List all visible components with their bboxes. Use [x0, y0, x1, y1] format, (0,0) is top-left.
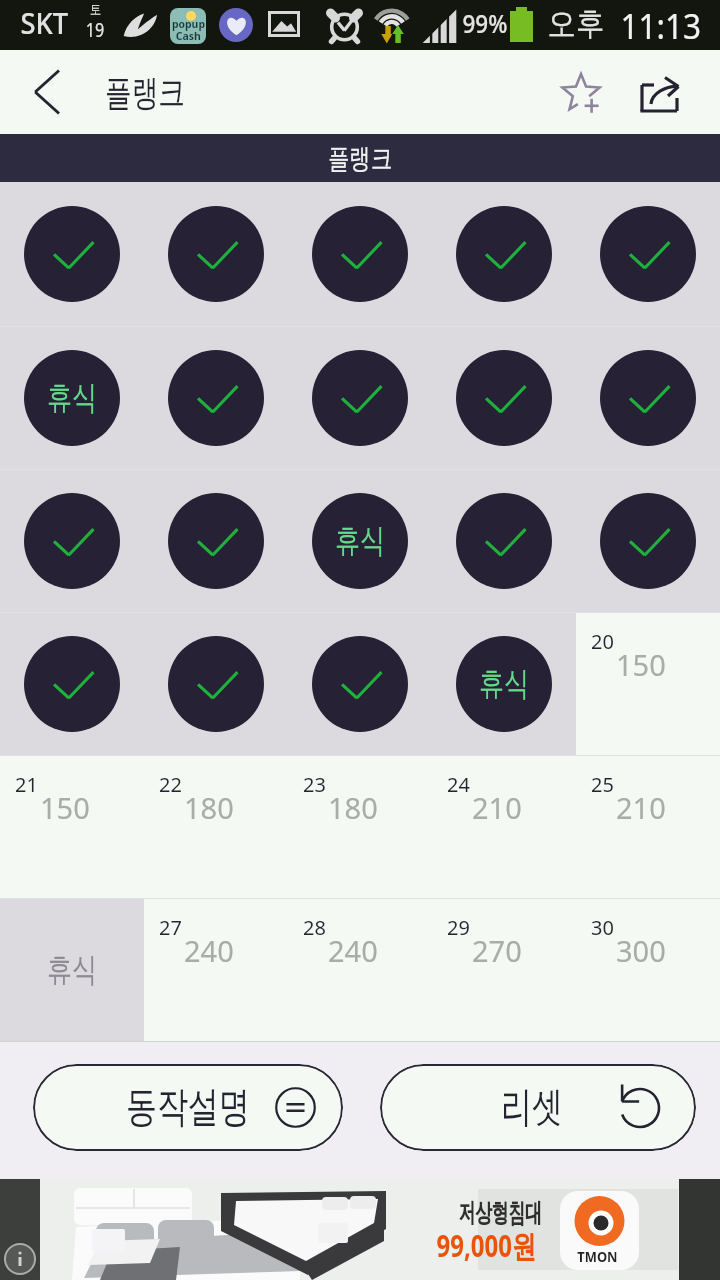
staticText: 29 [447, 914, 470, 941]
button[interactable]: 리셋 [380, 1064, 696, 1151]
staticText: 99,000원 [436, 1225, 536, 1266]
button[interactable] [288, 326, 432, 469]
button[interactable] [432, 326, 576, 469]
staticText: 25 [591, 771, 614, 798]
button[interactable]: 24 [432, 755, 576, 898]
staticText: 210 [616, 788, 666, 827]
button[interactable]: 휴식 [0, 898, 144, 1041]
button[interactable] [144, 612, 288, 755]
staticText: 리셋 [501, 1081, 563, 1134]
button[interactable] [0, 469, 144, 612]
button[interactable]: 휴식 [288, 469, 432, 612]
button[interactable]: Back [0, 50, 94, 134]
staticText: 11:13 [620, 2, 701, 50]
staticText: 210 [472, 788, 522, 827]
staticText: 30 [591, 914, 614, 941]
staticText: 21 [15, 771, 38, 798]
button[interactable]: 30 [576, 898, 720, 1041]
staticText: 플랭크 [105, 70, 185, 115]
button[interactable]: 27 [144, 898, 288, 1041]
button[interactable]: 휴식 [0, 326, 144, 469]
button[interactable]: Add to favourites [538, 50, 624, 134]
staticText: 22 [159, 771, 182, 798]
staticText: 플랭크 [328, 141, 392, 176]
staticText: SKT [20, 3, 68, 42]
button[interactable] [288, 182, 432, 326]
button[interactable]: 23 [288, 755, 432, 898]
button[interactable] [0, 182, 144, 326]
staticText: 240 [184, 931, 234, 970]
staticText: 동작설명 [126, 1081, 250, 1134]
staticText: 휴식 [335, 520, 385, 562]
button[interactable] [0, 612, 144, 755]
staticText: 휴식 [47, 949, 97, 991]
staticText: 토 [90, 1, 101, 17]
button[interactable] [576, 469, 720, 612]
staticText: 20 [591, 628, 614, 655]
button[interactable]: 28 [288, 898, 432, 1041]
staticText: 180 [328, 788, 378, 827]
button[interactable] [288, 612, 432, 755]
button[interactable]: 29 [432, 898, 576, 1041]
button[interactable] [144, 326, 288, 469]
button[interactable] [576, 182, 720, 326]
staticText: 240 [328, 931, 378, 970]
button[interactable]: 휴식 [432, 612, 576, 755]
button[interactable]: 25 [576, 755, 720, 898]
staticText: 저상형침대 [458, 1197, 542, 1230]
button[interactable]: Share [624, 50, 720, 134]
staticText: 28 [303, 914, 326, 941]
button[interactable]: 21 [0, 755, 144, 898]
staticText: 휴식 [479, 663, 529, 705]
staticText: 300 [616, 931, 666, 970]
staticText: 24 [447, 771, 470, 798]
button[interactable]: Advertisement [0, 1179, 720, 1280]
button[interactable] [144, 182, 288, 326]
button[interactable]: 20 [576, 612, 720, 755]
button[interactable] [576, 326, 720, 469]
staticText: 99% [462, 6, 507, 40]
staticText: 270 [472, 931, 522, 970]
button[interactable] [432, 182, 576, 326]
staticText: popup [172, 16, 205, 31]
staticText: 180 [184, 788, 234, 827]
staticText: 27 [159, 914, 182, 941]
button[interactable]: 22 [144, 755, 288, 898]
staticText: 오후 [548, 3, 604, 45]
staticText: TMON [577, 1246, 618, 1266]
button[interactable]: 동작설명 [33, 1064, 343, 1151]
staticText: 19 [86, 17, 104, 43]
staticText: 150 [616, 645, 666, 684]
button[interactable] [144, 469, 288, 612]
staticText: 150 [40, 788, 90, 827]
staticText: 휴식 [47, 377, 97, 419]
staticText: 23 [303, 771, 326, 798]
staticText: Cash [176, 28, 201, 43]
button[interactable] [432, 469, 576, 612]
